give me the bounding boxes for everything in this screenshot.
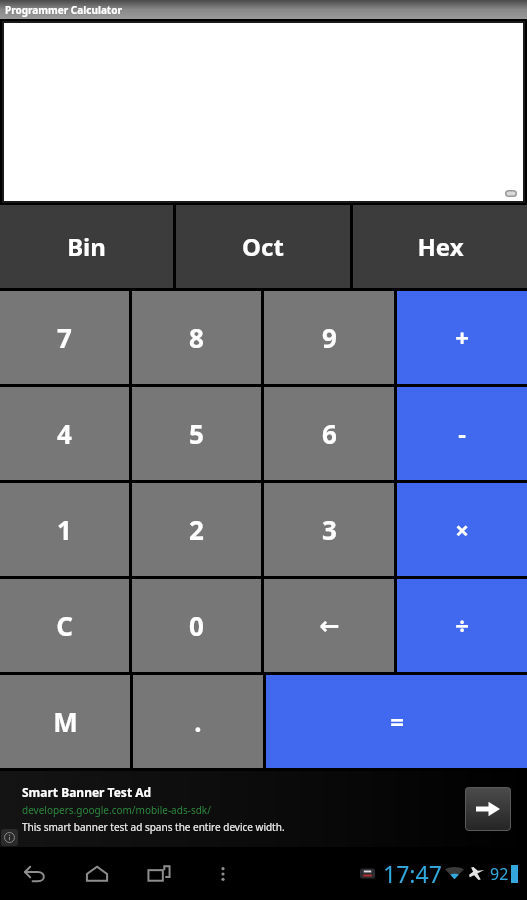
button[interactable]: Backspace [264,579,394,672]
button[interactable]: Bin [0,205,173,288]
staticText: × [455,513,469,546]
staticText: developers.google.com/mobile-ads-sdk/ [22,803,211,817]
button[interactable]: 0 [132,579,261,672]
staticText: C [56,608,73,643]
button[interactable]: Home [80,857,114,891]
staticText: This smart banner test ad spans the enti… [22,820,285,834]
button[interactable]: 8 [132,291,261,384]
button[interactable]: 5 [132,387,261,480]
staticText: 6 [322,416,337,451]
button[interactable]: 1 [0,483,129,576]
staticText: 2 [189,512,204,547]
button[interactable]: 3 [264,483,394,576]
button[interactable]: - [397,387,527,480]
button[interactable]: = [266,675,527,768]
button[interactable]: × [397,483,527,576]
staticText: 92 [490,863,509,885]
button[interactable]: ÷ [397,579,527,672]
staticText: Hex [417,230,464,263]
staticText: ← [319,612,340,640]
button[interactable]: More options [206,857,240,891]
button[interactable]: Hex [353,205,527,288]
button[interactable]: . [133,675,263,768]
staticText: M [53,704,78,739]
staticText: 3 [322,512,337,547]
button[interactable]: + [397,291,527,384]
button[interactable]: 4 [0,387,129,480]
staticText: Programmer Calculator [5,3,122,17]
staticText: 5 [189,416,204,451]
button[interactable]: Back [18,857,52,891]
button[interactable]: 9 [264,291,394,384]
staticText: . [194,704,202,739]
button[interactable]: C [0,579,129,672]
button[interactable]: Ad information [1,829,18,846]
button[interactable]: 2 [132,483,261,576]
button[interactable]: Recent apps [142,857,176,891]
staticText: 8 [189,320,204,355]
staticText: 17:47 [383,858,442,889]
staticText: = [390,705,404,738]
button[interactable]: Smart Banner Test Ad [0,771,527,847]
button[interactable]: 6 [264,387,394,480]
staticText: - [458,417,466,450]
staticText: ÷ [455,609,469,642]
button[interactable]: Oct [176,205,350,288]
button[interactable]: Open ad [465,787,511,831]
staticText: + [455,321,469,354]
staticText: 9 [322,320,337,355]
button[interactable]: M [0,675,130,768]
staticText: Oct [242,230,284,263]
staticText: 7 [57,320,72,355]
staticText: 0 [189,608,204,643]
button[interactable]: 7 [0,291,129,384]
staticText: 1 [57,512,72,547]
staticText: Smart Banner Test Ad [22,784,152,800]
staticText: 4 [57,416,72,451]
staticText: Bin [67,230,106,263]
